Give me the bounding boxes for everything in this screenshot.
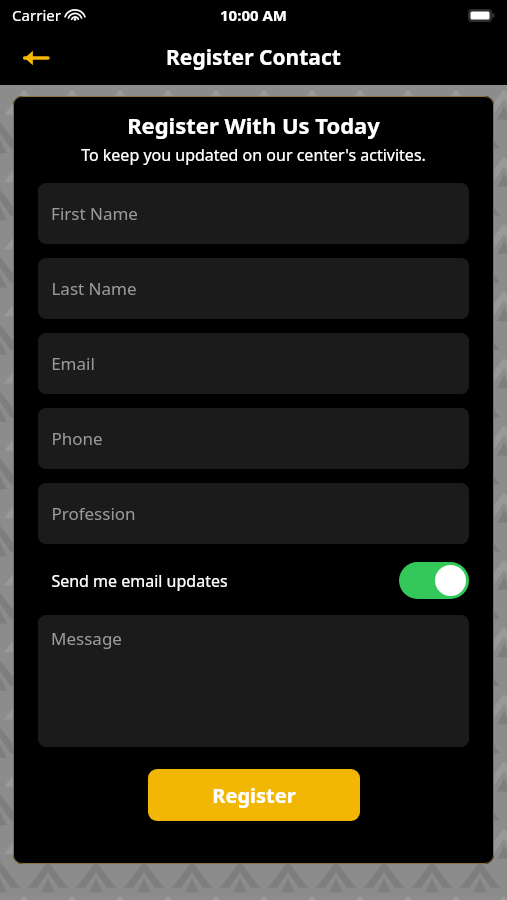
staticText: First Name (51, 202, 138, 225)
button[interactable]: Email (38, 333, 469, 394)
staticText: Profession (51, 502, 136, 525)
staticText: Email (51, 352, 95, 375)
button[interactable]: Message (38, 615, 469, 747)
button[interactable]: Send me email updates (38, 558, 469, 603)
staticText: To keep you updated on our center's acti… (81, 144, 426, 166)
staticText: Carrier (12, 5, 61, 25)
button[interactable]: Register (148, 769, 360, 821)
button[interactable]: Phone (38, 408, 469, 469)
button[interactable]: First Name (38, 183, 469, 244)
button[interactable]: Profession (38, 483, 469, 544)
staticText: 10:00 AM (220, 5, 287, 25)
staticText: Message (51, 627, 122, 650)
staticText: Send me email updates (51, 570, 228, 592)
staticText: Register (212, 782, 296, 809)
button[interactable]: Email updates toggle, on (399, 562, 469, 599)
button[interactable]: Back (14, 36, 58, 80)
staticText: Phone (51, 427, 103, 450)
staticText: Register Contact (166, 43, 341, 72)
staticText: Last Name (51, 277, 137, 300)
staticText: Register With Us Today (127, 110, 380, 140)
button[interactable]: Last Name (38, 258, 469, 319)
